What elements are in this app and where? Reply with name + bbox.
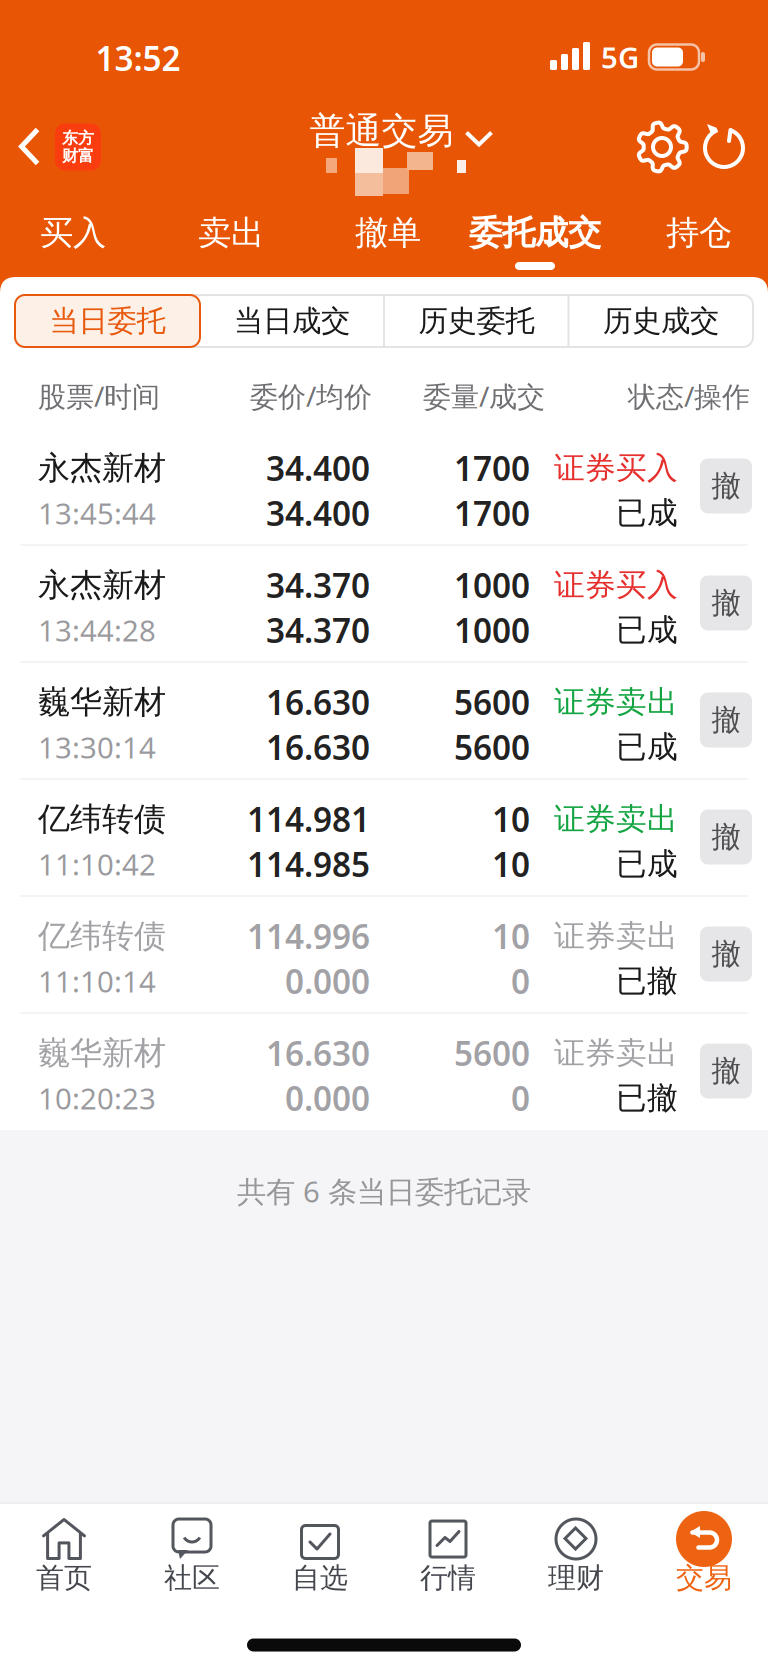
staticText: 5600 [454, 680, 530, 724]
staticText: 已成 [616, 845, 678, 883]
button[interactable]: 卖出 [192, 208, 270, 257]
staticText: 10 [492, 914, 530, 958]
staticText: 0.000 [285, 959, 370, 1003]
button[interactable]: 交易 [644, 1506, 764, 1606]
staticText: 证券卖出 [554, 917, 678, 955]
staticText: 行情 [420, 1561, 476, 1595]
staticText: 114.985 [247, 842, 370, 886]
button[interactable]: 撤单 [700, 692, 752, 747]
button[interactable]: Refresh [703, 125, 745, 169]
staticText: 10 [492, 797, 530, 841]
staticText: 证券卖出 [554, 683, 678, 721]
staticText: 永杰新材 [38, 565, 166, 605]
staticText: 亿纬转债 [38, 799, 166, 839]
staticText: 状态/操作 [628, 377, 750, 415]
staticText: 34.370 [266, 563, 370, 607]
button[interactable]: 行情 [388, 1506, 508, 1606]
button[interactable]: 撤单 [700, 809, 752, 864]
staticText: 撤 [711, 1053, 740, 1089]
staticText: 委量/成交 [423, 377, 545, 415]
staticText: 5G [601, 37, 639, 76]
staticText: 东方 [62, 128, 94, 148]
staticText: 1700 [454, 491, 530, 535]
button[interactable]: 买入 [34, 208, 112, 257]
staticText: 0.000 [285, 1076, 370, 1120]
staticText: 卖出 [198, 212, 264, 253]
staticText: 证券卖出 [554, 800, 678, 838]
staticText: 财富 [62, 146, 94, 166]
staticText: 已成 [616, 611, 678, 649]
button[interactable]: 历史委托 [385, 295, 567, 347]
staticText: 13:45:44 [38, 493, 156, 532]
staticText: 证券买入 [554, 566, 678, 604]
button[interactable]: 撤单 [349, 208, 427, 257]
staticText: 证券买入 [554, 449, 678, 487]
staticText: 当日成交 [234, 303, 350, 339]
button[interactable]: 首页 [4, 1506, 124, 1606]
staticText: 委托成交 [469, 212, 601, 253]
staticText: 10 [492, 842, 530, 886]
staticText: 撤 [711, 819, 740, 855]
staticText: 股票/时间 [38, 377, 160, 415]
staticText: 34.400 [266, 446, 370, 490]
staticText: 1000 [454, 608, 530, 652]
staticText: 社区 [164, 1561, 220, 1595]
staticText: 16.630 [266, 725, 370, 769]
staticText: 13:30:14 [38, 727, 156, 766]
button[interactable]: 撤单 [700, 1043, 752, 1098]
staticText: 买入 [40, 212, 106, 253]
staticText: 撤 [711, 702, 740, 738]
staticText: 114.981 [247, 797, 370, 841]
button[interactable]: 委托成交 [463, 208, 607, 257]
button[interactable]: 当日委托 [15, 295, 200, 347]
staticText: 委价/均价 [250, 377, 372, 415]
staticText: 5600 [454, 1031, 530, 1075]
button[interactable]: 撤单 [700, 926, 752, 981]
staticText: 0 [511, 1076, 530, 1120]
button[interactable]: 当日成交 [201, 295, 383, 347]
staticText: 16.630 [266, 1031, 370, 1075]
staticText: 首页 [36, 1561, 92, 1595]
button[interactable]: 撤单 [700, 575, 752, 630]
staticText: 亿纬转债 [38, 916, 166, 956]
staticText: 自选 [292, 1561, 348, 1595]
staticText: 共有 6 条当日委托记录 [237, 1171, 531, 1210]
staticText: 34.370 [266, 608, 370, 652]
staticText: 114.996 [247, 914, 370, 958]
staticText: 撤 [711, 468, 740, 504]
staticText: 历史成交 [603, 303, 719, 339]
button[interactable]: Back [10, 123, 49, 170]
staticText: 已成 [616, 728, 678, 766]
staticText: 撤 [711, 936, 740, 972]
staticText: 交易 [676, 1561, 732, 1595]
staticText: 34.400 [266, 491, 370, 535]
staticText: 巍华新材 [38, 682, 166, 722]
button[interactable]: Settings [633, 118, 691, 176]
staticText: 撤 [711, 585, 740, 621]
staticText: 13:44:28 [38, 610, 156, 649]
staticText: 普通交易 [309, 109, 453, 153]
staticText: 5600 [454, 725, 530, 769]
staticText: 已撤 [616, 962, 678, 1000]
button[interactable]: 自选 [260, 1506, 380, 1606]
button[interactable]: 持仓 [660, 208, 738, 257]
button[interactable]: 理财 [516, 1506, 636, 1606]
staticText: 13:52 [95, 36, 180, 80]
staticText: 11:10:42 [38, 844, 156, 883]
staticText: 11:10:14 [38, 961, 156, 1000]
button[interactable]: 社区 [132, 1506, 252, 1606]
staticText: 1700 [454, 446, 530, 490]
staticText: 巍华新材 [38, 1033, 166, 1073]
staticText: 已成 [616, 494, 678, 532]
staticText: 永杰新材 [38, 448, 166, 488]
button[interactable]: 撤单 [700, 458, 752, 513]
staticText: 已撤 [616, 1079, 678, 1117]
staticText: 当日委托 [49, 303, 165, 339]
staticText: 证券卖出 [554, 1034, 678, 1072]
staticText: 10:20:23 [38, 1078, 156, 1117]
button[interactable]: 历史成交 [570, 295, 752, 347]
staticText: 理财 [548, 1561, 604, 1595]
staticText: 0 [511, 959, 530, 1003]
staticText: 持仓 [666, 212, 732, 253]
button[interactable]: 普通交易 [309, 109, 492, 153]
